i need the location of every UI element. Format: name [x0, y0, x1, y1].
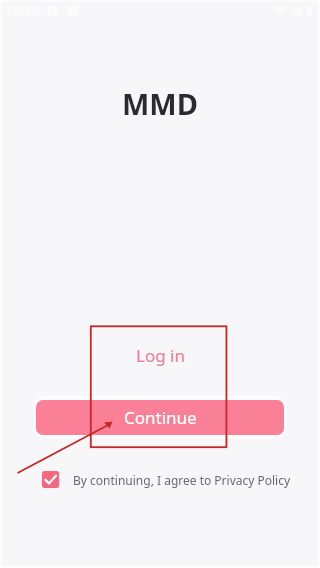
button[interactable]: By continuing, I agree to Privacy Policy — [42, 471, 291, 488]
button[interactable]: Log in — [112, 338, 209, 373]
staticText: MMD — [122, 84, 198, 123]
button[interactable]: Continue — [36, 400, 284, 435]
staticText: Continue — [124, 406, 197, 429]
staticText: By continuing, I agree to Privacy Policy — [73, 472, 291, 488]
staticText: Log in — [136, 344, 185, 367]
